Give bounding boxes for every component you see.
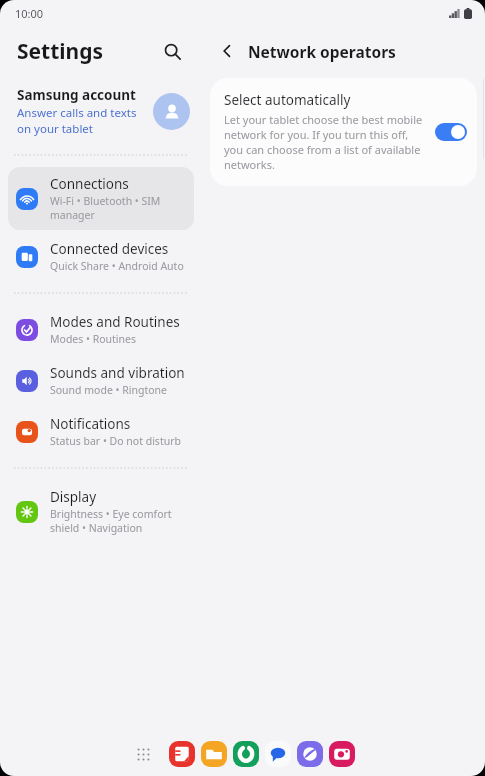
button[interactable]: Display: [8, 480, 194, 543]
button[interactable]: Back: [212, 36, 242, 66]
button[interactable]: Select automatically: [210, 78, 477, 186]
button[interactable]: Phone: [233, 741, 259, 767]
button[interactable]: Connected devices: [8, 232, 194, 281]
staticText: Network operators: [248, 41, 396, 62]
button[interactable]: Samsung Internet: [297, 741, 323, 767]
staticText: Wi-Fi • Bluetooth • SIM manager: [50, 194, 186, 222]
button[interactable]: Connections: [8, 167, 194, 230]
staticText: Answer calls and texts on your tablet: [17, 105, 145, 136]
staticText: Connections: [50, 175, 129, 193]
staticText: Select automatically: [224, 91, 351, 109]
button[interactable]: Notifications: [8, 407, 194, 456]
button[interactable]: Apps: [128, 739, 158, 769]
staticText: Brightness • Eye comfort shield • Naviga…: [50, 507, 186, 535]
staticText: Modes and Routines: [50, 313, 180, 331]
staticText: 10:00: [15, 6, 44, 21]
staticText: Status bar • Do not disturb: [50, 434, 181, 448]
staticText: Modes • Routines: [50, 332, 137, 346]
button[interactable]: Sounds and vibration: [8, 356, 194, 405]
staticText: Quick Share • Android Auto: [50, 259, 184, 273]
staticText: Display: [50, 488, 97, 506]
staticText: Connected devices: [50, 240, 169, 258]
button[interactable]: Modes and Routines: [8, 305, 194, 354]
button[interactable]: My Files: [201, 741, 227, 767]
staticText: Let your tablet choose the best mobile n…: [224, 112, 425, 172]
button[interactable]: Camera: [329, 741, 355, 767]
button[interactable]: Messages: [265, 741, 291, 767]
staticText: Samsung account: [17, 86, 136, 104]
staticText: Settings: [17, 37, 104, 66]
staticText: Sound mode • Ringtone: [50, 383, 167, 397]
button[interactable]: Search: [154, 33, 190, 69]
staticText: Notifications: [50, 415, 131, 433]
button[interactable]: Samsung Notes: [169, 741, 195, 767]
button[interactable]: Samsung account: [0, 86, 202, 136]
staticText: Sounds and vibration: [50, 364, 185, 382]
button[interactable]: Select automatically toggle: [435, 123, 467, 141]
